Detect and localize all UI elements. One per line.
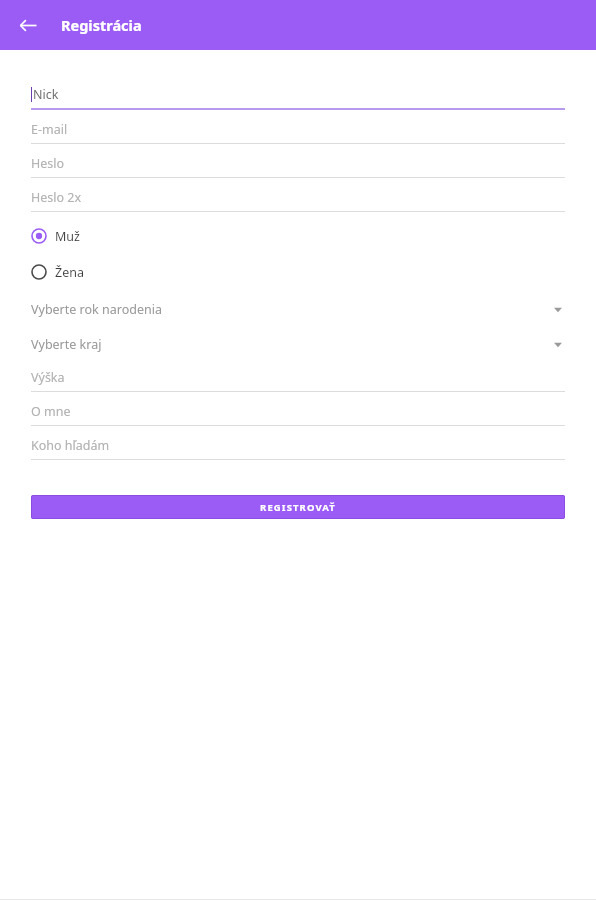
button[interactable]: Muž	[31, 218, 565, 254]
staticText: Nick	[33, 86, 59, 103]
staticText: Koho hľadám	[31, 437, 110, 454]
staticText: Žena	[55, 264, 84, 281]
button[interactable]: Koho hľadám	[31, 431, 565, 460]
staticText: Heslo	[31, 155, 65, 172]
staticText: O mne	[31, 403, 71, 420]
button[interactable]: Vyberte kraj	[31, 327, 565, 362]
staticText: REGISTROVAŤ	[260, 501, 336, 514]
button[interactable]: Žena	[31, 254, 565, 290]
button[interactable]: Vyberte rok narodenia	[31, 292, 565, 327]
staticText: E-mail	[31, 121, 68, 138]
staticText: Muž	[55, 228, 80, 245]
button[interactable]: Back	[12, 9, 44, 41]
button[interactable]: Heslo	[31, 149, 565, 178]
button[interactable]: Nick	[31, 80, 565, 110]
staticText: Výška	[31, 369, 65, 386]
button[interactable]: Výška	[31, 363, 565, 392]
staticText: Vyberte kraj	[31, 336, 102, 353]
button[interactable]: O mne	[31, 397, 565, 426]
staticText: Vyberte rok narodenia	[31, 301, 162, 318]
button[interactable]: REGISTROVAŤ	[31, 495, 565, 519]
button[interactable]: Heslo 2x	[31, 183, 565, 212]
staticText: Registrácia	[61, 15, 142, 35]
button[interactable]: E-mail	[31, 115, 565, 144]
staticText: Heslo 2x	[31, 189, 82, 206]
